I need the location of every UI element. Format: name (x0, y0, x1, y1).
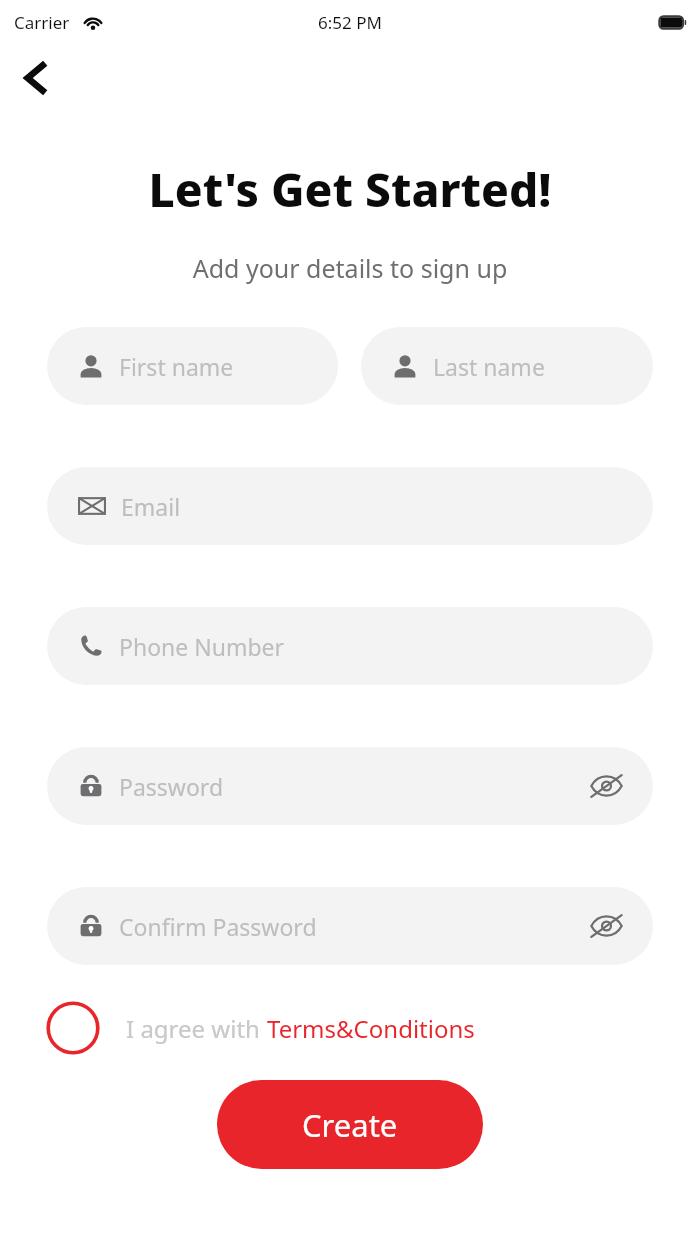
staticText: I agree with (126, 1012, 267, 1045)
button[interactable]: Show password (585, 765, 627, 807)
staticText: Add your details to sign up (0, 251, 700, 285)
button[interactable]: Confirm Password (47, 887, 653, 965)
button[interactable]: Password (47, 747, 653, 825)
button[interactable]: Terms&Conditions (267, 1012, 475, 1045)
button[interactable]: Last name (361, 327, 653, 405)
staticText: Let's Get Started! (0, 158, 700, 221)
button[interactable]: First name (47, 327, 338, 405)
button[interactable]: Show password (585, 905, 627, 947)
staticText: Last name (433, 351, 545, 382)
staticText: Password (119, 771, 224, 802)
staticText: Phone Number (119, 631, 285, 662)
staticText: 6:52 PM (318, 11, 382, 34)
button[interactable]: Back (8, 50, 64, 106)
staticText: Create (302, 1104, 398, 1146)
button[interactable]: Phone Number (47, 607, 653, 685)
button[interactable]: Create (217, 1080, 483, 1169)
button[interactable]: Email (47, 467, 653, 545)
staticText: First name (119, 351, 234, 382)
staticText: Carrier (14, 11, 70, 34)
staticText: Email (121, 491, 181, 522)
staticText: Confirm Password (119, 911, 317, 942)
button[interactable]: Agree to terms (45, 1000, 101, 1056)
